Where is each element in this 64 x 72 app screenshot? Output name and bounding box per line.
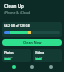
button[interactable]: Settings	[46, 62, 56, 72]
staticText: Photos	[4, 51, 14, 55]
button[interactable]: Clean Now	[2, 39, 62, 46]
button[interactable]: Home	[9, 62, 19, 72]
staticText: Videos	[35, 51, 45, 55]
button[interactable]: Videos	[33, 49, 62, 62]
button[interactable]: 64.2 GB of 128 GB	[2, 22, 62, 37]
staticText: 8.1 GB	[35, 55, 43, 58]
button[interactable]: Files	[27, 62, 37, 72]
staticText: iPhone & iCloud	[4, 10, 31, 15]
staticText: Clean Now	[23, 40, 42, 45]
staticText: 12.4 GB	[4, 55, 13, 58]
button[interactable]: Photos	[2, 49, 31, 62]
staticText: Clean Up	[4, 3, 24, 9]
staticText: 64.2 GB of 128 GB	[4, 24, 30, 28]
